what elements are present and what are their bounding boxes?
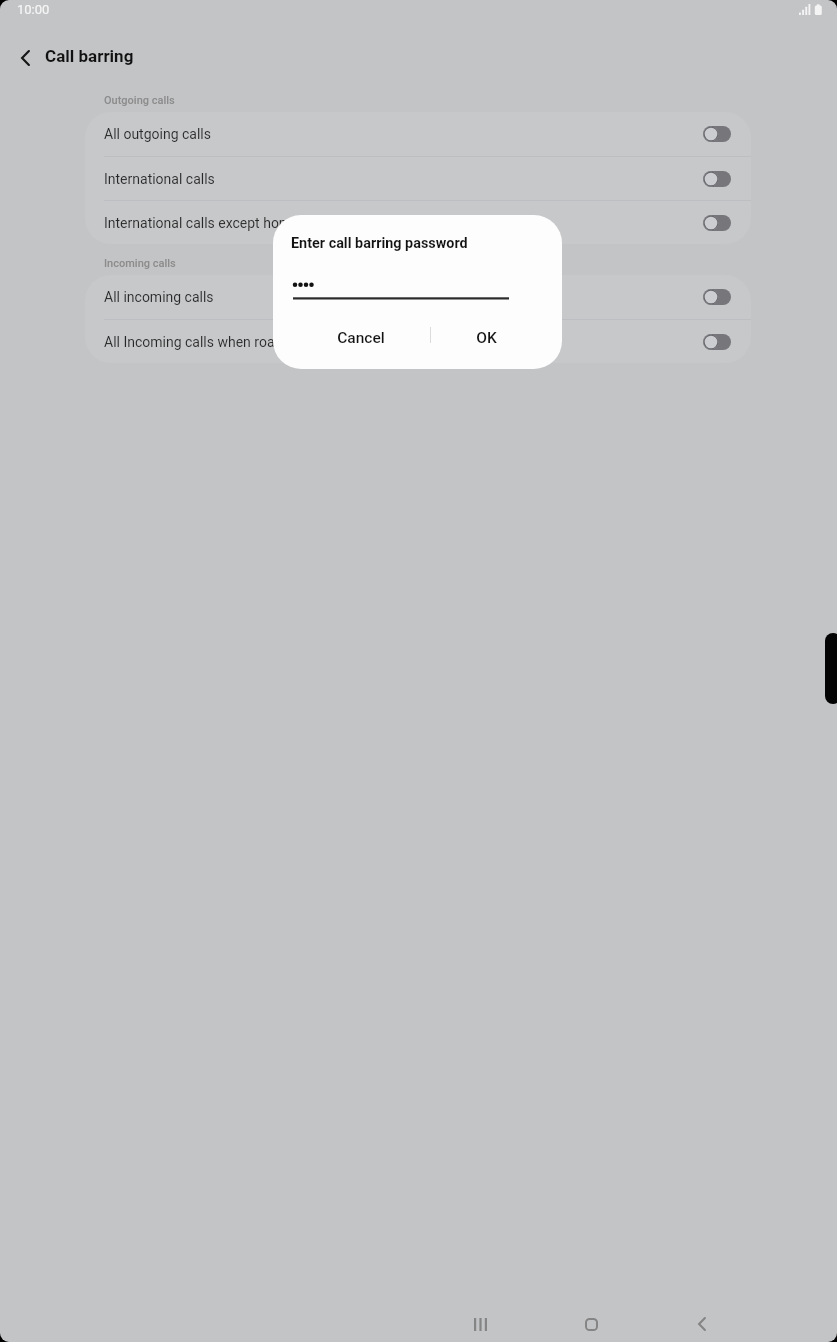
staticText: Call barring bbox=[45, 46, 134, 66]
button[interactable]: Toggle bbox=[703, 334, 731, 350]
button[interactable]: International calls bbox=[85, 157, 751, 200]
button[interactable]: All incoming calls bbox=[85, 275, 751, 319]
button[interactable]: Cancel bbox=[327, 317, 395, 359]
staticText: OK bbox=[476, 329, 497, 347]
staticText: International calls bbox=[104, 171, 703, 187]
staticText: All incoming calls bbox=[104, 289, 703, 305]
button[interactable]: Recent apps bbox=[442, 1288, 518, 1342]
button[interactable]: Toggle bbox=[703, 215, 731, 231]
button[interactable]: All outgoing calls bbox=[85, 112, 751, 156]
button[interactable]: Home bbox=[553, 1288, 629, 1342]
staticText: Enter call barring password bbox=[291, 235, 468, 252]
button[interactable]: Toggle bbox=[703, 171, 731, 187]
button[interactable]: Navigate up bbox=[7, 40, 43, 76]
button[interactable]: International calls except home bbox=[85, 201, 751, 244]
staticText: Cancel bbox=[337, 329, 385, 347]
button[interactable]: Back bbox=[664, 1288, 740, 1342]
button[interactable]: Toggle bbox=[703, 289, 731, 305]
button[interactable]: All Incoming calls when roaming bbox=[85, 320, 751, 363]
button[interactable]: Toggle bbox=[703, 126, 731, 142]
button[interactable]: OK bbox=[463, 317, 509, 359]
staticText: All Incoming calls when roaming bbox=[104, 334, 703, 350]
staticText: International calls except home bbox=[104, 215, 703, 231]
staticText: 10:00 bbox=[17, 2, 50, 17]
staticText: Incoming calls bbox=[104, 257, 176, 270]
button[interactable]: Edge panel handle bbox=[825, 633, 837, 704]
staticText: Outgoing calls bbox=[104, 94, 175, 107]
staticText: All outgoing calls bbox=[104, 126, 703, 142]
